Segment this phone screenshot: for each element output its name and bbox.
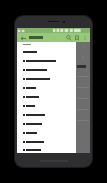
button[interactable] [21,75,74,83]
button[interactable] [21,84,74,92]
button[interactable]: Search [65,34,73,42]
button[interactable]: Bookmarks [73,34,81,42]
button[interactable]: More options [81,34,88,41]
button[interactable] [21,48,74,56]
button[interactable] [21,93,74,101]
button[interactable]: Index panel [76,42,90,153]
button[interactable] [21,129,74,137]
button[interactable] [21,57,74,65]
button[interactable] [21,120,74,128]
button[interactable] [21,138,74,146]
button[interactable]: Navigate up [19,34,27,42]
button[interactable] [21,102,74,110]
button[interactable] [21,66,74,74]
button[interactable] [21,111,74,119]
button[interactable] [21,147,74,153]
